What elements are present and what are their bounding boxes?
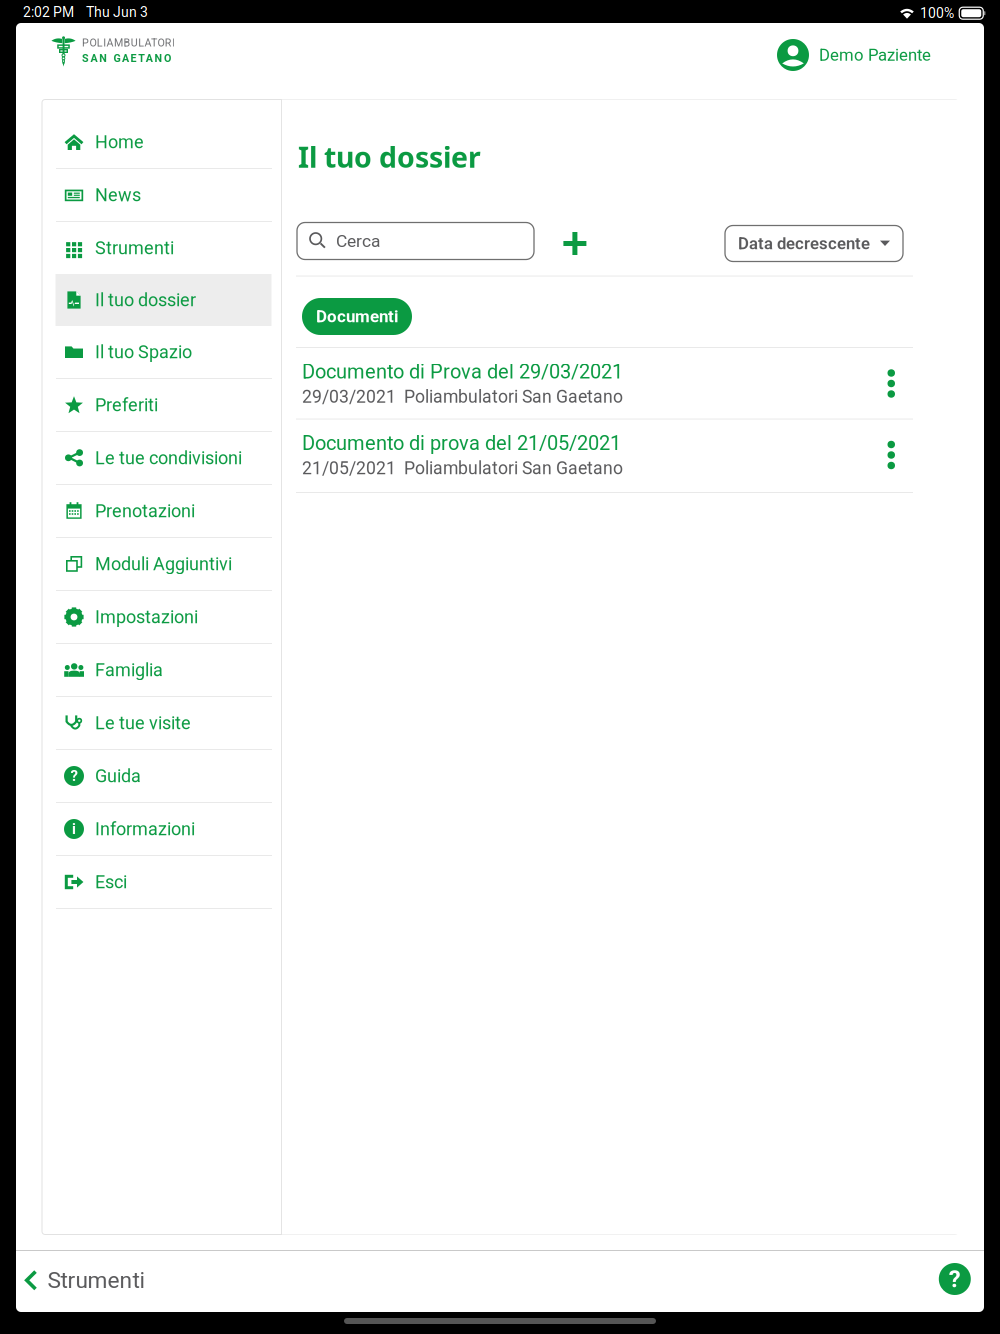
staticText: Home [95,131,144,153]
staticText: Guida [95,765,141,787]
button[interactable]: Guida [932,1256,978,1302]
staticText: Prenotazioni [95,500,195,522]
button[interactable]: Documento di Prova del 29/03/2021 [296,348,913,419]
staticText: Impostazioni [95,606,198,628]
staticText: Il tuo Spazio [95,341,192,363]
button[interactable]: Le tue condivisioni [55,432,271,484]
button[interactable]: ? [55,750,271,802]
staticText: Esci [95,871,127,893]
staticText: Thu Jun 3 [86,4,148,20]
staticText: ? [949,1265,961,1293]
button[interactable]: Data decrescente [725,225,903,261]
staticText: Strumenti [47,1267,145,1294]
button[interactable]: Esci [55,856,271,908]
staticText: 100% [920,5,954,21]
staticText: Moduli Aggiuntivi [95,553,232,575]
staticText: News [95,184,141,206]
staticText: Il tuo dossier [95,289,196,311]
staticText: Informazioni [95,818,195,840]
staticText: ? [70,767,77,785]
staticText: Preferiti [95,394,158,416]
staticText: Documento di Prova del 29/03/2021 [302,360,623,383]
button[interactable]: Il tuo Spazio [55,326,271,378]
staticText: Il tuo dossier [298,137,481,176]
button[interactable]: Moduli Aggiuntivi [55,538,271,590]
staticText: 21/05/2021 Poliambulatori San Gaetano [302,458,623,478]
staticText: Documento di prova del 21/05/2021 [302,431,621,455]
button[interactable]: Impostazioni [55,591,271,643]
staticText: i [72,820,76,838]
button[interactable]: Il tuo dossier [55,274,271,326]
staticText: Strumenti [95,237,174,259]
button[interactable]: Documento di prova del 21/05/2021 [296,419,913,490]
button[interactable]: Home [55,116,271,168]
staticText: Le tue condivisioni [95,447,242,469]
staticText: SAN GAETANO [82,52,171,64]
staticText: Cerca [336,231,380,251]
staticText: Famiglia [95,659,163,681]
button[interactable]: Famiglia [55,644,271,696]
button[interactable]: i [55,803,271,855]
staticText: Le tue visite [95,712,191,734]
staticText: 2:02 PM [23,4,74,20]
button[interactable]: Documenti [302,298,412,335]
button[interactable]: Preferiti [55,379,271,431]
button[interactable]: Strumenti [16,1259,153,1302]
staticText: 29/03/2021 Poliambulatori San Gaetano [302,386,623,407]
button[interactable]: News [55,169,271,221]
button[interactable]: Prenotazioni [55,485,271,537]
staticText: Data decrescente [738,234,870,253]
button[interactable]: Le tue visite [55,697,271,749]
button[interactable]: Strumenti [55,222,271,274]
staticText: Documenti [316,307,398,326]
staticText: POLIAMBULATORI [82,36,175,49]
button[interactable]: Aggiungi documento [556,225,593,262]
button[interactable]: Demo Paziente [771,34,937,76]
staticText: Demo Paziente [819,45,931,65]
